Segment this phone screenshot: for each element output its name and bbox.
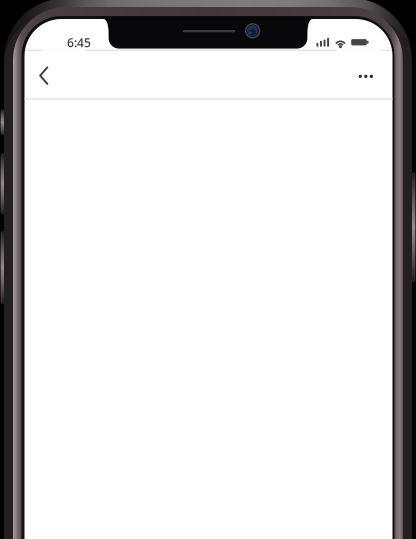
button[interactable]: More options [336, 50, 380, 98]
staticText: 6:45 [67, 34, 91, 50]
button[interactable]: Back [41, 50, 85, 98]
